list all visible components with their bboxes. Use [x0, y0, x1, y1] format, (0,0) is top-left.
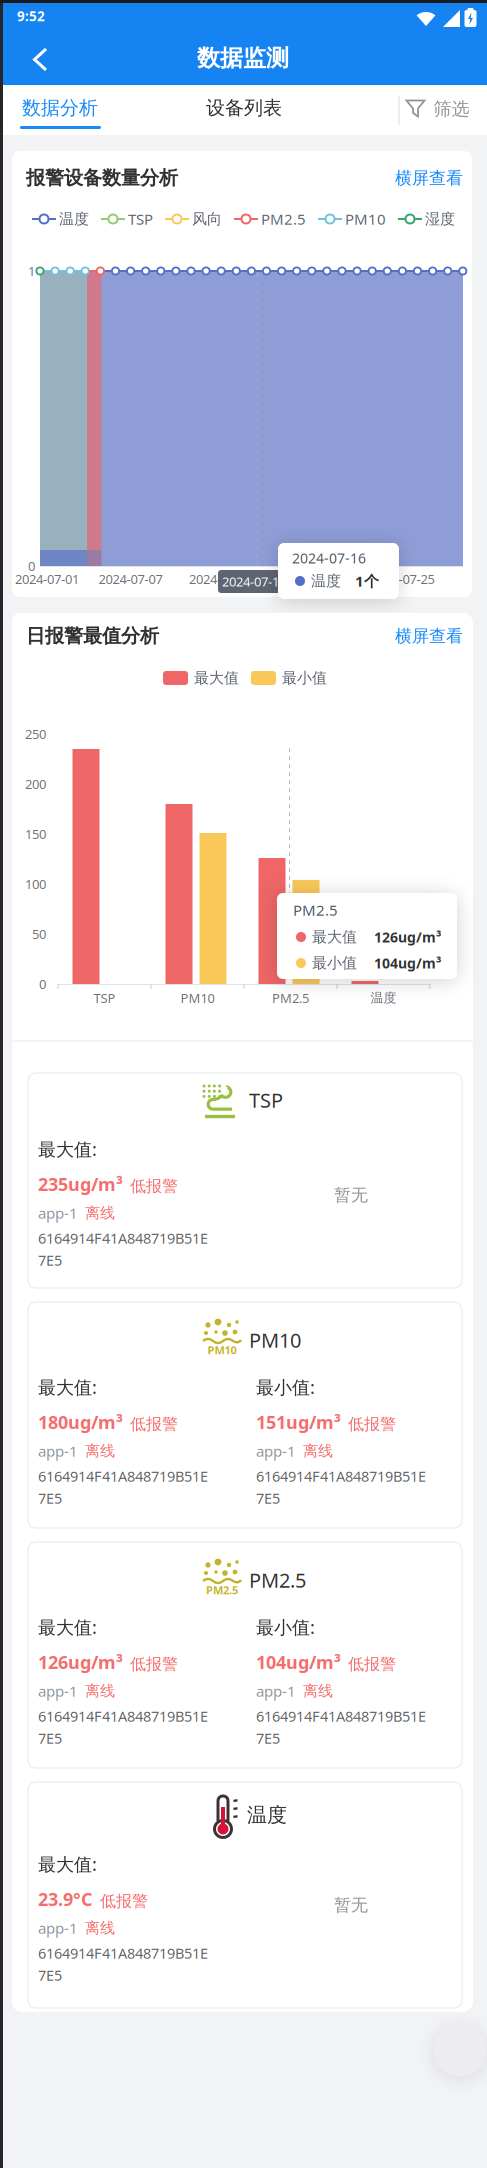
staticText: 9:52 [17, 7, 45, 25]
staticText: 暂无 [334, 1185, 368, 1205]
staticText: 暂无 [334, 1895, 368, 1915]
staticText: 6164914F41A848719B51E [38, 1466, 208, 1486]
staticText: PM2.5 [261, 209, 306, 229]
staticText: 最大值 [312, 928, 357, 946]
button[interactable]: 返回 [18, 37, 62, 81]
button[interactable]: 横屏查看 [391, 622, 467, 650]
button[interactable]: TSP [101, 209, 153, 229]
staticText: 235ug/m³ [38, 1172, 123, 1196]
staticText: 2024-07-13 [189, 570, 253, 588]
staticText: 温度 [247, 1803, 287, 1827]
staticText: 离线 [85, 1442, 115, 1460]
staticText: 数据监测 [197, 44, 289, 72]
staticText: 6164914F41A848719B51E [256, 1706, 426, 1726]
staticText: 数据分析 [22, 96, 98, 120]
staticText: 126ug/m³ [38, 1650, 123, 1674]
staticText: PM10 [207, 1343, 236, 1357]
staticText: 7E5 [256, 1728, 280, 1748]
staticText: app-1 [256, 1441, 296, 1461]
staticText: app-1 [256, 1681, 296, 1701]
staticText: PM10 [249, 1327, 301, 1353]
staticText: 最大值: [38, 1375, 97, 1399]
staticText: 7E5 [38, 1488, 62, 1508]
button[interactable]: 横屏查看 [391, 164, 467, 192]
staticText: 6164914F41A848719B51E [38, 1228, 208, 1248]
staticText: 最小值 [312, 954, 357, 972]
staticText: 最小值: [256, 1615, 315, 1639]
staticText: 2024-07-25 [370, 570, 434, 588]
staticText: 104ug/m³ [374, 954, 441, 972]
staticText: 筛选 [433, 98, 469, 120]
button[interactable]: 风向 [165, 210, 222, 228]
staticText: 250 [25, 725, 46, 743]
staticText: 低报警 [348, 1414, 396, 1434]
staticText: TSP [249, 1087, 283, 1113]
staticText: 最小值: [256, 1375, 315, 1399]
button[interactable]: 筛选 [389, 88, 485, 130]
button[interactable]: PM2.5 [234, 209, 306, 229]
staticText: 日报警最值分析 [26, 624, 159, 648]
button[interactable]: 数据分析 [0, 87, 120, 129]
staticText: 温度 [370, 990, 396, 1006]
button[interactable]: 温度 [32, 210, 89, 228]
staticText: 温度 [59, 210, 89, 228]
staticText: 126ug/m³ [374, 928, 441, 946]
staticText: 横屏查看 [395, 626, 463, 646]
staticText: 离线 [85, 1919, 115, 1937]
button[interactable]: PM10 [318, 209, 386, 229]
staticText: 7E5 [256, 1488, 280, 1508]
staticText: 7E5 [38, 1728, 62, 1748]
staticText: 104ug/m³ [256, 1650, 341, 1674]
staticText: 2024-07-19 [280, 570, 344, 588]
staticText: 50 [32, 925, 46, 943]
staticText: app-1 [38, 1681, 78, 1701]
staticText: 23.9°C [38, 1887, 93, 1911]
staticText: 低报警 [130, 1176, 178, 1196]
staticText: 151ug/m³ [256, 1410, 341, 1434]
staticText: app-1 [38, 1441, 78, 1461]
staticText: 6164914F41A848719B51E [38, 1943, 208, 1963]
staticText: 2024-07-07 [98, 570, 162, 588]
staticText: PM10 [345, 209, 386, 229]
staticText: 最小值 [282, 669, 327, 687]
staticText: 7E5 [38, 1965, 62, 1985]
staticText: 温度 [311, 572, 341, 590]
staticText: 2024-07-16 [222, 573, 286, 590]
staticText: app-1 [38, 1203, 78, 1223]
staticText: 离线 [85, 1204, 115, 1222]
staticText: 横屏查看 [395, 168, 463, 188]
staticText: 7E5 [38, 1250, 62, 1270]
staticText: PM2.5 [249, 1567, 306, 1593]
staticText: 湿度 [425, 210, 455, 228]
staticText: 2024-07-01 [15, 570, 79, 588]
staticText: 最大值: [38, 1615, 97, 1639]
staticText: 设备列表 [206, 96, 282, 120]
staticText: 1个 [355, 571, 379, 591]
staticText: 0 [28, 557, 35, 575]
button[interactable]: 设备列表 [184, 87, 304, 129]
staticText: PM2.5 [272, 989, 309, 1007]
staticText: 低报警 [130, 1654, 178, 1674]
staticText: 1 [28, 262, 35, 280]
staticText: PM2.5 [206, 1583, 238, 1597]
staticText: 180ug/m³ [38, 1410, 123, 1434]
staticText: 150 [25, 825, 46, 843]
staticText: app-1 [38, 1918, 78, 1938]
staticText: 低报警 [100, 1891, 148, 1911]
staticText: 最大值 [194, 669, 239, 687]
staticText: 200 [25, 775, 46, 793]
staticText: 6164914F41A848719B51E [38, 1706, 208, 1726]
button[interactable]: 最大值 [163, 669, 239, 687]
staticText: 6164914F41A848719B51E [256, 1466, 426, 1486]
staticText: PM2.5 [293, 900, 338, 920]
staticText: 最大值: [38, 1137, 97, 1161]
button[interactable]: 湿度 [398, 210, 455, 228]
staticText: PM10 [180, 989, 214, 1007]
staticText: 低报警 [348, 1654, 396, 1674]
staticText: 离线 [303, 1442, 333, 1460]
staticText: 风向 [192, 210, 222, 228]
staticText: 离线 [85, 1682, 115, 1700]
staticText: 最大值: [38, 1852, 97, 1876]
button[interactable]: 最小值 [251, 669, 327, 687]
